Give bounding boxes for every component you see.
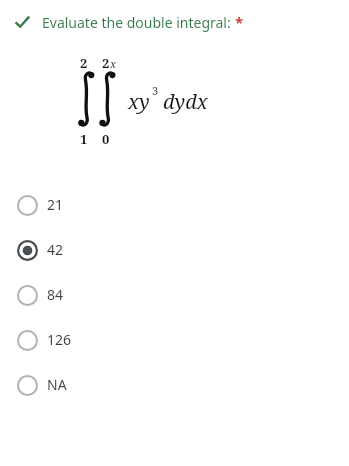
staticText: NA (47, 375, 67, 394)
staticText: 2 (102, 54, 110, 72)
other: Correct (12, 12, 32, 32)
staticText: 84 (47, 285, 64, 304)
staticText: Evaluate the double integral: (42, 13, 231, 32)
staticText: 21 (47, 195, 64, 214)
staticText: xy (128, 88, 150, 115)
button[interactable]: 84 (0, 272, 349, 317)
button[interactable]: 126 (0, 317, 349, 362)
button[interactable]: 42 (0, 227, 349, 272)
staticText: dydx (163, 88, 208, 115)
staticText: 42 (47, 240, 64, 259)
staticText: 2 (80, 54, 88, 72)
staticText: x (110, 56, 117, 71)
staticText: 3 (152, 83, 159, 98)
button[interactable]: NA (0, 362, 349, 407)
button[interactable]: 21 (0, 182, 349, 227)
staticText: 1 (80, 130, 88, 148)
staticText: * (235, 12, 244, 32)
staticText: 0 (102, 130, 110, 148)
staticText: 126 (47, 330, 72, 349)
